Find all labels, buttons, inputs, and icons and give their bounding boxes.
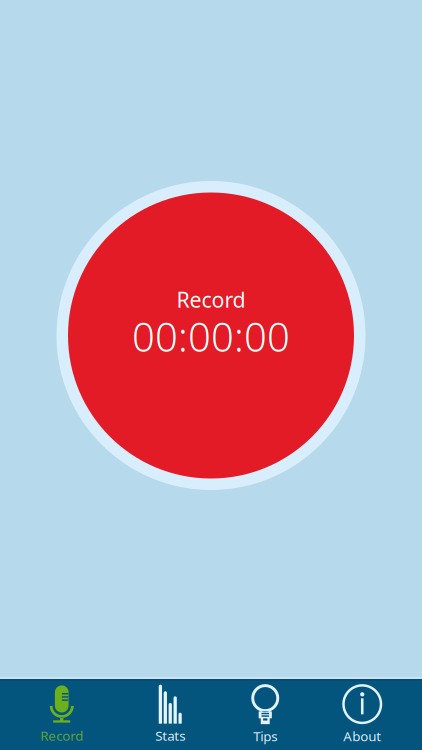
- staticText: Tips: [253, 727, 277, 745]
- staticText: 00:00:00: [132, 310, 290, 363]
- button[interactable]: About: [316, 682, 422, 749]
- staticText: Stats: [155, 727, 185, 744]
- staticText: Record: [176, 285, 245, 314]
- button[interactable]: Stats: [105, 683, 211, 748]
- staticText: About: [343, 727, 381, 745]
- button[interactable]: Record: [0, 683, 105, 748]
- staticText: Record: [40, 727, 83, 744]
- button[interactable]: Record: [56, 181, 365, 490]
- button[interactable]: Tips: [211, 682, 316, 749]
